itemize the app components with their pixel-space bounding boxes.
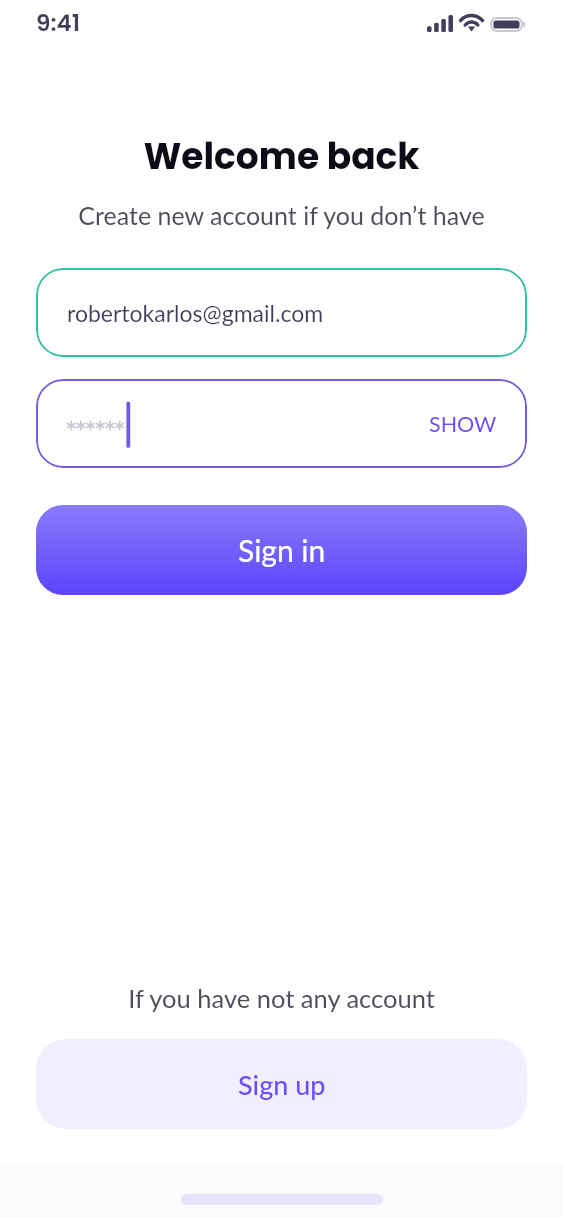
staticText: If you have not any account (0, 983, 563, 1014)
staticText: 9:41 (36, 7, 80, 39)
button[interactable]: Sign in (36, 505, 527, 595)
staticText: Create new account if you don’t have (0, 200, 563, 230)
staticText: Welcome back (0, 131, 563, 181)
button[interactable]: Show password (418, 402, 508, 446)
button[interactable]: robertokarlos@gmail.com (36, 268, 527, 357)
staticText: Sign in (238, 532, 326, 568)
staticText: robertokarlos@gmail.com (67, 299, 324, 327)
button[interactable]: Show password (36, 379, 527, 468)
other: Wi-Fi (460, 15, 483, 32)
staticText: SHOW (429, 411, 497, 437)
other: Cellular signal (427, 15, 453, 32)
staticText: Sign up (238, 1068, 326, 1100)
other: Battery (490, 17, 525, 32)
button[interactable]: Sign up (36, 1039, 527, 1129)
